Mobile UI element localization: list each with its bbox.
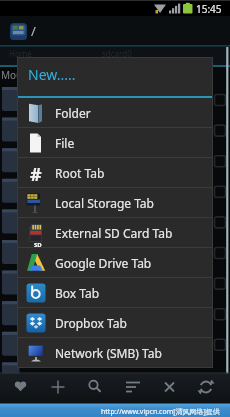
staticText: # <box>30 162 42 184</box>
staticText: Google Drive Tab <box>55 255 152 271</box>
button[interactable]: # <box>18 158 212 188</box>
button[interactable]: Local Storage Tab <box>18 188 212 218</box>
button[interactable]: Network (SMB) Tab <box>18 338 212 367</box>
staticText: Network (SMB) Tab <box>55 345 162 361</box>
staticText: Home <box>9 48 32 59</box>
button[interactable]: Folder <box>18 98 212 128</box>
staticText: Folder <box>55 105 91 121</box>
staticText: / <box>31 22 36 40</box>
button[interactable] <box>115 373 152 403</box>
staticText: SD <box>34 241 42 249</box>
staticText: Root Tab <box>55 165 105 181</box>
staticText: External SD Card Tab <box>55 225 173 241</box>
button[interactable] <box>77 373 114 403</box>
staticText: Dropbox Tab <box>55 315 127 331</box>
button[interactable]: Box Tab <box>18 278 212 308</box>
staticText: Local Storage Tab <box>55 195 154 211</box>
staticText: 15:45 <box>196 2 222 16</box>
button[interactable]: Dropbox Tab <box>18 308 212 338</box>
button[interactable]: Google Drive Tab <box>18 248 212 278</box>
button[interactable] <box>191 373 228 403</box>
staticText: sdcard0 <box>102 48 132 59</box>
staticText: File <box>55 135 75 151</box>
staticText: Box Tab <box>55 285 100 301</box>
staticText: Mou <box>1 68 23 82</box>
button[interactable] <box>39 373 76 403</box>
staticText: New..... <box>28 65 76 84</box>
button[interactable]: File <box>18 128 212 158</box>
staticText: http://www.vipcn.com[清风网络]提供 <box>101 407 220 417</box>
button[interactable] <box>153 373 190 403</box>
button[interactable] <box>1 373 38 403</box>
button[interactable]: SD <box>18 218 212 248</box>
